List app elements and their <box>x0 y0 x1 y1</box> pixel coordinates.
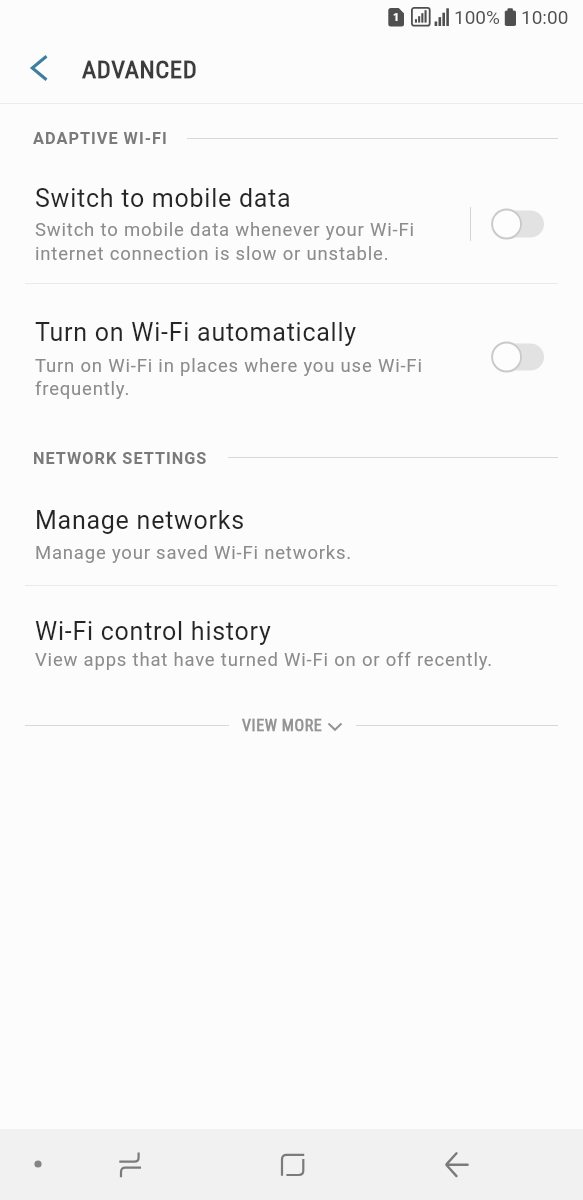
staticText: frequently. <box>35 378 131 400</box>
staticText: Switch to mobile data whenever your Wi-F… <box>35 219 415 241</box>
staticText: ADVANCED <box>82 55 198 84</box>
staticText: 100% <box>454 6 500 28</box>
staticText: 1 <box>393 11 400 24</box>
button[interactable]: Manage networks <box>0 480 583 585</box>
button[interactable] <box>14 44 66 92</box>
button[interactable] <box>106 1140 154 1188</box>
button[interactable]: Turn on Wi-Fi automatically <box>0 284 583 420</box>
staticText: View apps that have turned Wi-Fi on or o… <box>35 649 493 671</box>
staticText: Wi-Fi control history <box>35 617 272 646</box>
staticText: NETWORK SETTINGS <box>33 449 208 468</box>
staticText: Switch to mobile data <box>35 184 292 213</box>
button[interactable] <box>431 1140 479 1188</box>
staticText: Turn on Wi-Fi automatically <box>35 318 357 347</box>
staticText: internet connection is slow or unstable. <box>35 243 390 265</box>
staticText: Manage your saved Wi-Fi networks. <box>35 542 352 564</box>
staticText: 10:00 <box>521 6 569 28</box>
button[interactable]: VIEW MORE <box>232 708 350 744</box>
staticText: VIEW MORE <box>242 716 323 735</box>
staticText: Turn on Wi-Fi in places where you use Wi… <box>35 355 423 377</box>
staticText: Manage networks <box>35 506 245 535</box>
staticText: ADAPTIVE WI-FI <box>33 129 168 148</box>
button[interactable]: Switch to mobile data <box>0 150 583 283</box>
button[interactable] <box>267 1140 315 1188</box>
button[interactable]: Wi-Fi control history <box>0 586 583 694</box>
